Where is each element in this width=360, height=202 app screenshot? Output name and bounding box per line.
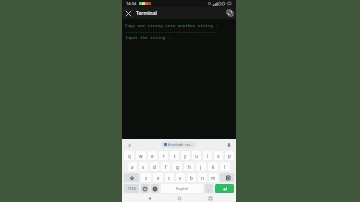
button[interactable]: u [192, 151, 201, 160]
button[interactable]: d [150, 162, 159, 171]
staticText: ------------------------------------ [125, 29, 216, 35]
staticText: o [217, 153, 220, 159]
button[interactable]: i [203, 151, 212, 160]
staticText: g [176, 164, 179, 170]
staticText: z [145, 175, 148, 181]
staticText: h [188, 164, 191, 170]
button[interactable]: Expand toolbar [125, 141, 133, 149]
button[interactable]: k [208, 162, 218, 171]
button[interactable]: e [148, 151, 157, 160]
button[interactable]: Emoji [141, 184, 149, 193]
button[interactable]: x [153, 173, 163, 182]
button[interactable]: g [172, 162, 182, 171]
staticText: d [153, 164, 156, 170]
staticText: 14:34 [126, 1, 137, 6]
button[interactable]: j [196, 162, 206, 171]
staticText: k [212, 164, 215, 170]
button[interactable]: Voice input [225, 141, 233, 149]
button[interactable]: o [214, 151, 223, 160]
button[interactable]: a [128, 162, 137, 171]
button[interactable]: s [139, 162, 148, 171]
button[interactable]: v [176, 173, 185, 182]
button[interactable]: q [124, 151, 134, 160]
button[interactable]: b [187, 173, 196, 182]
button[interactable]: n [198, 173, 207, 182]
staticText: Terminal [136, 10, 157, 17]
button[interactable]: z [141, 173, 151, 182]
button[interactable]: Shift [124, 173, 139, 182]
staticText: r [163, 153, 165, 159]
staticText: j [200, 164, 202, 170]
staticText: p [228, 153, 231, 159]
staticText: m [211, 175, 216, 181]
staticText: i [207, 153, 209, 159]
button[interactable]: Recent apps [206, 194, 214, 202]
staticText: s [142, 164, 145, 170]
staticText: y [184, 153, 187, 159]
staticText: c [168, 175, 171, 181]
button[interactable]: y [181, 151, 190, 160]
button[interactable]: r [159, 151, 168, 160]
button[interactable]: f [161, 162, 170, 171]
button[interactable]: l [220, 162, 230, 171]
button[interactable]: t [170, 151, 179, 160]
staticText: l [224, 164, 226, 170]
staticText: a [131, 164, 134, 170]
staticText: w [139, 153, 143, 159]
button[interactable]: Home [175, 194, 183, 202]
staticText: v [179, 175, 182, 181]
button[interactable]: Backspace [220, 173, 234, 182]
staticText: b [190, 175, 193, 181]
button[interactable]: Enter [215, 184, 234, 193]
staticText: Input the string : [125, 35, 171, 41]
button[interactable]: Copy [224, 7, 236, 19]
staticText: x [157, 175, 160, 181]
staticText: #include <st... [168, 142, 193, 147]
button[interactable]: m [209, 173, 218, 182]
staticText: English [176, 186, 189, 191]
button[interactable]: c [165, 173, 174, 182]
button[interactable]: English [161, 184, 203, 193]
button[interactable]: w [136, 151, 146, 160]
staticText: . [208, 186, 210, 192]
staticText: t [174, 153, 176, 159]
staticText: f [165, 164, 167, 170]
button[interactable]: #include <st... [161, 141, 196, 148]
staticText: q [128, 153, 131, 159]
button[interactable]: Change language [151, 184, 159, 193]
button[interactable]: ?123 [124, 184, 139, 193]
staticText: e [151, 153, 154, 159]
staticText: Copy one string into another string : [125, 23, 218, 29]
button[interactable]: . [205, 184, 213, 193]
staticText: ?123 [128, 186, 136, 191]
staticText: u [195, 153, 198, 159]
button[interactable]: p [225, 151, 234, 160]
button[interactable]: Back [145, 194, 153, 202]
staticText: n [201, 175, 204, 181]
button[interactable]: Close [122, 7, 134, 19]
button[interactable]: h [184, 162, 194, 171]
